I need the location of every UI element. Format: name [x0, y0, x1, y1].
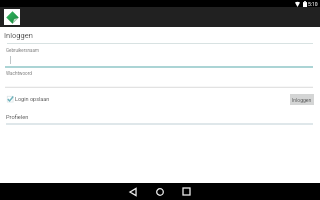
staticText: Profielen: [6, 114, 29, 121]
other: Battery: [303, 1, 307, 7]
button[interactable]: App logo: [4, 9, 20, 25]
staticText: 5:10: [308, 1, 318, 7]
staticText: Gebruikersnaam: [6, 48, 39, 53]
staticText: Inloggen: [4, 31, 33, 40]
button[interactable]: Recent apps: [174, 183, 198, 200]
button[interactable]: Profielen: [6, 114, 29, 121]
staticText: Wachtwoord: [6, 71, 32, 76]
button[interactable]: Back: [121, 183, 145, 200]
button[interactable]: Home: [148, 183, 172, 200]
staticText: Inloggen: [292, 97, 312, 103]
button[interactable]: Inloggen: [290, 94, 314, 105]
staticText: Login opslaan: [15, 96, 50, 102]
button[interactable]: Login opslaan: [6, 95, 50, 103]
other: Wi-Fi: [295, 2, 300, 7]
